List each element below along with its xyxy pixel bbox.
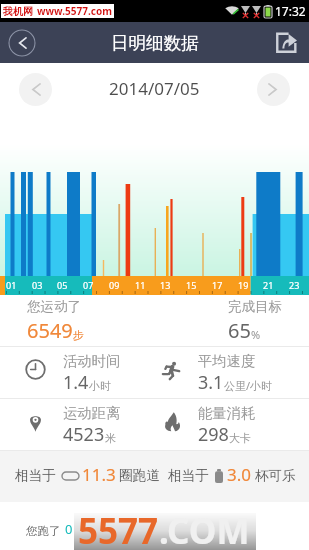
staticText: 相当于: [168, 467, 209, 484]
staticText: 2014/07/05: [109, 77, 200, 100]
staticText: 小时: [89, 379, 111, 393]
staticText: 6549: [27, 317, 73, 344]
staticText: 您跑了: [26, 524, 61, 538]
staticText: 3.1: [198, 370, 224, 395]
staticText: 4523: [63, 422, 105, 447]
staticText: 分钟: [216, 524, 236, 537]
button[interactable]: Back: [8, 29, 36, 57]
staticText: 17: [212, 279, 223, 291]
staticText: 杯可乐: [255, 467, 296, 484]
button[interactable]: Previous day: [19, 73, 52, 106]
staticText: 1.4: [63, 370, 89, 395]
staticText: 日明细数据: [111, 32, 199, 54]
staticText: .COM: [159, 507, 250, 547]
button[interactable]: 活动时间: [20, 347, 146, 398]
staticText: 公里/小时: [224, 378, 273, 393]
staticText: 0: [65, 520, 73, 538]
staticText: 大卡: [229, 431, 251, 445]
staticText: 07: [83, 279, 94, 291]
staticText: 03: [32, 279, 43, 291]
staticText: 大卡: [146, 524, 166, 537]
staticText: 0: [137, 520, 145, 538]
staticText: 我机网: [3, 5, 33, 18]
staticText: 21: [263, 279, 274, 291]
button[interactable]: 运动距离: [20, 399, 146, 450]
staticText: 相当于: [15, 467, 56, 484]
staticText: 65: [228, 317, 251, 344]
staticText: 0: [207, 520, 215, 538]
staticText: www.5577.com: [37, 4, 112, 18]
staticText: 01: [6, 279, 17, 291]
staticText: 5577: [78, 507, 159, 547]
staticText: 23: [289, 279, 300, 291]
staticText: 能量消耗: [198, 404, 256, 422]
button[interactable]: 能量消耗: [157, 399, 283, 450]
staticText: 圈跑道: [119, 467, 160, 484]
staticText: 米: [105, 431, 116, 445]
button[interactable]: 平均速度: [157, 347, 283, 398]
staticText: 运动距离: [63, 404, 121, 422]
staticText: 11: [135, 279, 146, 291]
staticText: 消耗了: [98, 524, 133, 538]
staticText: 13: [160, 279, 171, 291]
staticText: 完成目标: [228, 298, 282, 315]
staticText: 3.0: [227, 463, 252, 486]
staticText: %: [251, 327, 261, 342]
staticText: 平均速度: [198, 352, 256, 370]
staticText: 17:32: [275, 3, 306, 19]
staticText: 步: [74, 524, 84, 537]
button[interactable]: Next day: [257, 73, 290, 106]
staticText: 19: [238, 279, 249, 291]
staticText: 15: [186, 279, 197, 291]
staticText: 步: [73, 328, 84, 342]
staticText: 您运动了: [27, 298, 81, 315]
button[interactable]: Share: [276, 32, 297, 53]
staticText: 11.3: [82, 463, 116, 486]
staticText: 用时: [180, 524, 203, 538]
staticText: 活动时间: [63, 352, 121, 370]
staticText: 05: [57, 279, 68, 291]
staticText: 298: [198, 422, 229, 447]
staticText: 09: [109, 279, 120, 291]
